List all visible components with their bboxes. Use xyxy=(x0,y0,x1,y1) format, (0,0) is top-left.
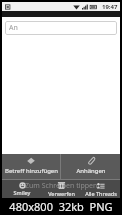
staticText: Verwerfen xyxy=(48,190,75,197)
staticText: Alle Threads xyxy=(85,190,117,197)
button[interactable]: Smiley einfügen xyxy=(2,180,42,198)
staticText: Anhängen xyxy=(76,167,106,175)
other: Alle Threads xyxy=(97,182,105,190)
staticText: Betreff hinzufügen xyxy=(5,167,58,175)
staticText: Smiley einfügen xyxy=(2,189,42,196)
other: Anhängen xyxy=(86,156,96,166)
staticText: An xyxy=(9,23,18,33)
button[interactable]: An xyxy=(5,21,117,35)
button[interactable]: Alle Threads xyxy=(81,180,120,198)
button[interactable]: Betreff hinzufügen xyxy=(2,154,60,179)
other: Betreff hinzufügen xyxy=(26,156,36,166)
staticText: Zum Schreiben tippen xyxy=(25,181,98,191)
other: Verwerfen xyxy=(57,181,66,190)
staticText: 480x800 32kb PNG xyxy=(9,199,113,214)
staticText: 19:47 xyxy=(102,3,118,11)
other: Smiley einfügen xyxy=(19,182,26,189)
button[interactable]: Anhängen xyxy=(61,154,120,179)
button[interactable]: Verwerfen xyxy=(42,180,81,198)
